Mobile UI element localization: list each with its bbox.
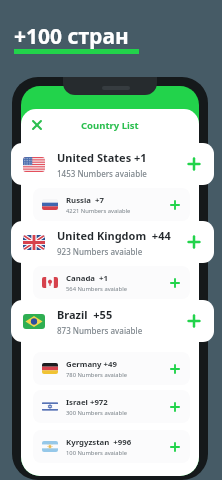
staticText: Canada +1 bbox=[66, 273, 108, 284]
staticText: 4221 Numbers avaiable bbox=[66, 207, 131, 215]
staticText: Israel +972 bbox=[66, 397, 108, 408]
button[interactable]: Israel +972 bbox=[33, 390, 190, 423]
staticText: 300 Numbers avaiable bbox=[66, 409, 127, 417]
staticText: 923 Numbers avaiable bbox=[57, 246, 143, 257]
staticText: 873 Numbers avaiable bbox=[57, 325, 143, 336]
button[interactable]: Russia +7 bbox=[33, 188, 190, 221]
staticText: 1453 Numbers avaiable bbox=[57, 168, 147, 179]
button[interactable]: Brazil +55 bbox=[11, 300, 214, 342]
button[interactable]: Add number bbox=[186, 234, 202, 250]
button[interactable]: Add number bbox=[186, 156, 202, 172]
staticText: Kyrgyzstan +996 bbox=[66, 437, 132, 448]
staticText: United States +1 bbox=[57, 150, 147, 165]
button[interactable]: Close bbox=[28, 116, 46, 134]
button[interactable]: Add number bbox=[169, 199, 181, 211]
staticText: 100 Numbers avaiable bbox=[66, 449, 127, 457]
staticText: Country List bbox=[81, 119, 139, 132]
button[interactable]: United States +1 bbox=[11, 143, 214, 185]
staticText: Germany +49 bbox=[66, 359, 117, 370]
button[interactable]: Add number bbox=[169, 363, 181, 375]
button[interactable]: Kyrgyzstan +996 bbox=[33, 430, 190, 463]
button[interactable]: Canada +1 bbox=[33, 266, 190, 299]
button[interactable]: United Kingdom +44 bbox=[11, 221, 214, 263]
staticText: +100 стран bbox=[14, 22, 129, 51]
staticText: 780 Numbers avaiable bbox=[66, 371, 127, 379]
button[interactable]: Add number bbox=[186, 313, 202, 329]
button[interactable]: Add number bbox=[169, 441, 181, 453]
button[interactable]: Add number bbox=[169, 277, 181, 289]
staticText: Brazil +55 bbox=[57, 307, 113, 322]
button[interactable]: Country List bbox=[81, 119, 139, 132]
button[interactable]: Add number bbox=[169, 401, 181, 413]
staticText: Russia +7 bbox=[66, 195, 104, 206]
staticText: 564 Numbers avaiable bbox=[66, 285, 127, 293]
button[interactable]: Germany +49 bbox=[33, 352, 190, 385]
staticText: United Kingdom +44 bbox=[57, 228, 171, 243]
